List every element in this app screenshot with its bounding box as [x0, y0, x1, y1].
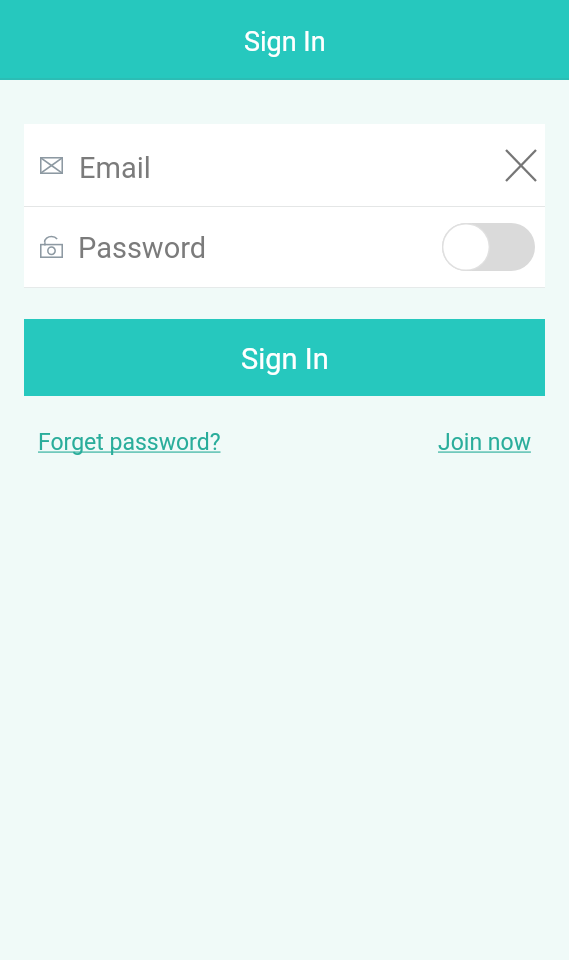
staticText: Join now	[438, 429, 531, 456]
staticText: Password	[78, 231, 207, 265]
button[interactable]: Forget password?	[30, 423, 229, 462]
staticText: Forget password?	[38, 429, 221, 456]
button[interactable]: Show password	[442, 223, 535, 271]
button[interactable]: Clear email	[497, 141, 545, 189]
button[interactable]: Password	[24, 207, 545, 287]
staticText: Sign In	[241, 342, 329, 376]
staticText: Email	[79, 151, 151, 185]
button[interactable]: Join now	[430, 423, 539, 462]
button[interactable]: Sign In	[24, 319, 545, 396]
staticText: Sign In	[244, 26, 326, 58]
button[interactable]: Email	[24, 124, 545, 206]
